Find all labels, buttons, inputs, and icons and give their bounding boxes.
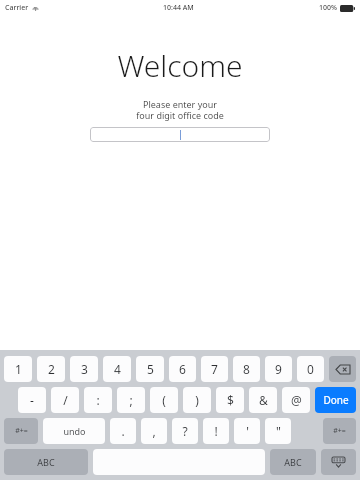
staticText: .: [121, 423, 125, 439]
button[interactable]: [90, 127, 270, 142]
staticText: Welcome: [0, 45, 360, 86]
button[interactable]: !: [203, 418, 229, 444]
staticText: $: [227, 392, 234, 408]
staticText: ': [246, 423, 249, 439]
button[interactable]: 8: [233, 356, 260, 382]
button[interactable]: undo: [43, 418, 105, 444]
button[interactable]: 0: [297, 356, 324, 382]
button[interactable]: #+=: [323, 418, 356, 444]
staticText: #+=: [333, 426, 346, 436]
staticText: Done: [323, 393, 349, 407]
staticText: #+=: [15, 426, 28, 436]
button[interactable]: (: [150, 387, 178, 413]
staticText: ;: [129, 392, 133, 408]
button[interactable]: 3: [70, 356, 98, 382]
button[interactable]: @: [282, 387, 310, 413]
staticText: :: [96, 392, 100, 408]
staticText: 5: [147, 361, 154, 377]
staticText: 8: [243, 361, 250, 377]
staticText: ABC: [37, 456, 55, 468]
staticText: !: [214, 423, 218, 439]
button[interactable]: ": [265, 418, 291, 444]
button[interactable]: ABC: [270, 449, 316, 475]
staticText: 2: [48, 361, 55, 377]
button[interactable]: ;: [117, 387, 145, 413]
staticText: ): [195, 392, 199, 408]
button[interactable]: /: [51, 387, 79, 413]
staticText: undo: [63, 425, 86, 437]
button[interactable]: 2: [37, 356, 65, 382]
button[interactable]: Backspace: [329, 356, 356, 382]
staticText: 10:44 AM: [163, 3, 194, 13]
button[interactable]: ,: [141, 418, 167, 444]
staticText: 4: [114, 361, 121, 377]
staticText: 3: [81, 361, 88, 377]
staticText: 9: [275, 361, 282, 377]
staticText: ,: [152, 423, 156, 439]
staticText: 0: [307, 361, 314, 377]
button[interactable]: 7: [201, 356, 228, 382]
button[interactable]: 1: [4, 356, 32, 382]
button[interactable]: 6: [169, 356, 196, 382]
staticText: 100%: [319, 3, 337, 13]
button[interactable]: Done: [315, 387, 356, 413]
staticText: &: [259, 392, 268, 408]
staticText: 1: [15, 361, 22, 377]
staticText: Please enter your four digit office code: [0, 98, 360, 121]
staticText: (: [162, 392, 166, 408]
button[interactable]: &: [249, 387, 277, 413]
button[interactable]: Hide keyboard: [321, 449, 356, 475]
staticText: 7: [211, 361, 218, 377]
button[interactable]: ?: [172, 418, 198, 444]
button[interactable]: 5: [136, 356, 164, 382]
staticText: ": [276, 423, 281, 439]
button[interactable]: ABC: [4, 449, 88, 475]
staticText: @: [291, 392, 302, 408]
staticText: 6: [179, 361, 186, 377]
button[interactable]: :: [84, 387, 112, 413]
button[interactable]: ': [234, 418, 260, 444]
button[interactable]: #+=: [4, 418, 38, 444]
staticText: ABC: [284, 456, 302, 468]
staticText: -: [30, 392, 34, 408]
button[interactable]: 9: [265, 356, 292, 382]
staticText: Carrier: [5, 3, 29, 13]
button[interactable]: -: [18, 387, 46, 413]
staticText: /: [63, 392, 68, 408]
button[interactable]: $: [216, 387, 244, 413]
button[interactable]: .: [110, 418, 136, 444]
button[interactable]: ): [183, 387, 211, 413]
button[interactable]: 4: [103, 356, 131, 382]
staticText: ?: [182, 423, 188, 439]
